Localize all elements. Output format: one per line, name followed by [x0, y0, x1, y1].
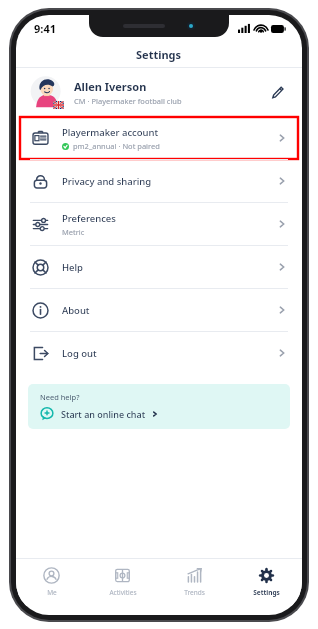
button[interactable]: Help	[16, 246, 302, 288]
staticText: Privacy and sharing	[62, 175, 152, 188]
button[interactable]: Allen Iverson	[16, 68, 302, 116]
staticText: Trends	[184, 588, 205, 597]
staticText: Activities	[109, 588, 137, 597]
staticText: Need help?	[40, 392, 80, 402]
staticText: CM · Playermaker football club	[74, 96, 182, 106]
staticText: Log out	[62, 347, 97, 360]
staticText: Allen Iverson	[74, 79, 147, 94]
button[interactable]: Privacy and sharing	[16, 160, 302, 202]
staticText: Settings	[136, 47, 182, 62]
button[interactable]: Playermaker account	[20, 117, 298, 159]
staticText: pm2_annual · Not paired	[73, 141, 160, 151]
button[interactable]: Need help?	[28, 384, 290, 429]
button[interactable]: Activities	[87, 559, 158, 605]
button[interactable]: About	[16, 289, 302, 331]
staticText: Me	[47, 588, 57, 597]
button[interactable]: Settings	[230, 559, 302, 605]
staticText: Settings	[253, 588, 280, 597]
staticText: Metric	[62, 227, 85, 237]
button[interactable]: Preferences	[16, 203, 302, 245]
staticText: Help	[62, 261, 84, 274]
staticText: Preferences	[62, 212, 116, 225]
staticText: About	[62, 304, 90, 317]
button[interactable]: Log out	[16, 332, 302, 374]
staticText: Start an online chat	[61, 408, 146, 420]
staticText: 9:41	[34, 21, 56, 36]
button[interactable]: Edit profile	[266, 81, 288, 103]
button[interactable]: Trends	[158, 559, 230, 605]
staticText: Playermaker account	[62, 126, 159, 139]
button[interactable]: Me	[16, 559, 87, 605]
